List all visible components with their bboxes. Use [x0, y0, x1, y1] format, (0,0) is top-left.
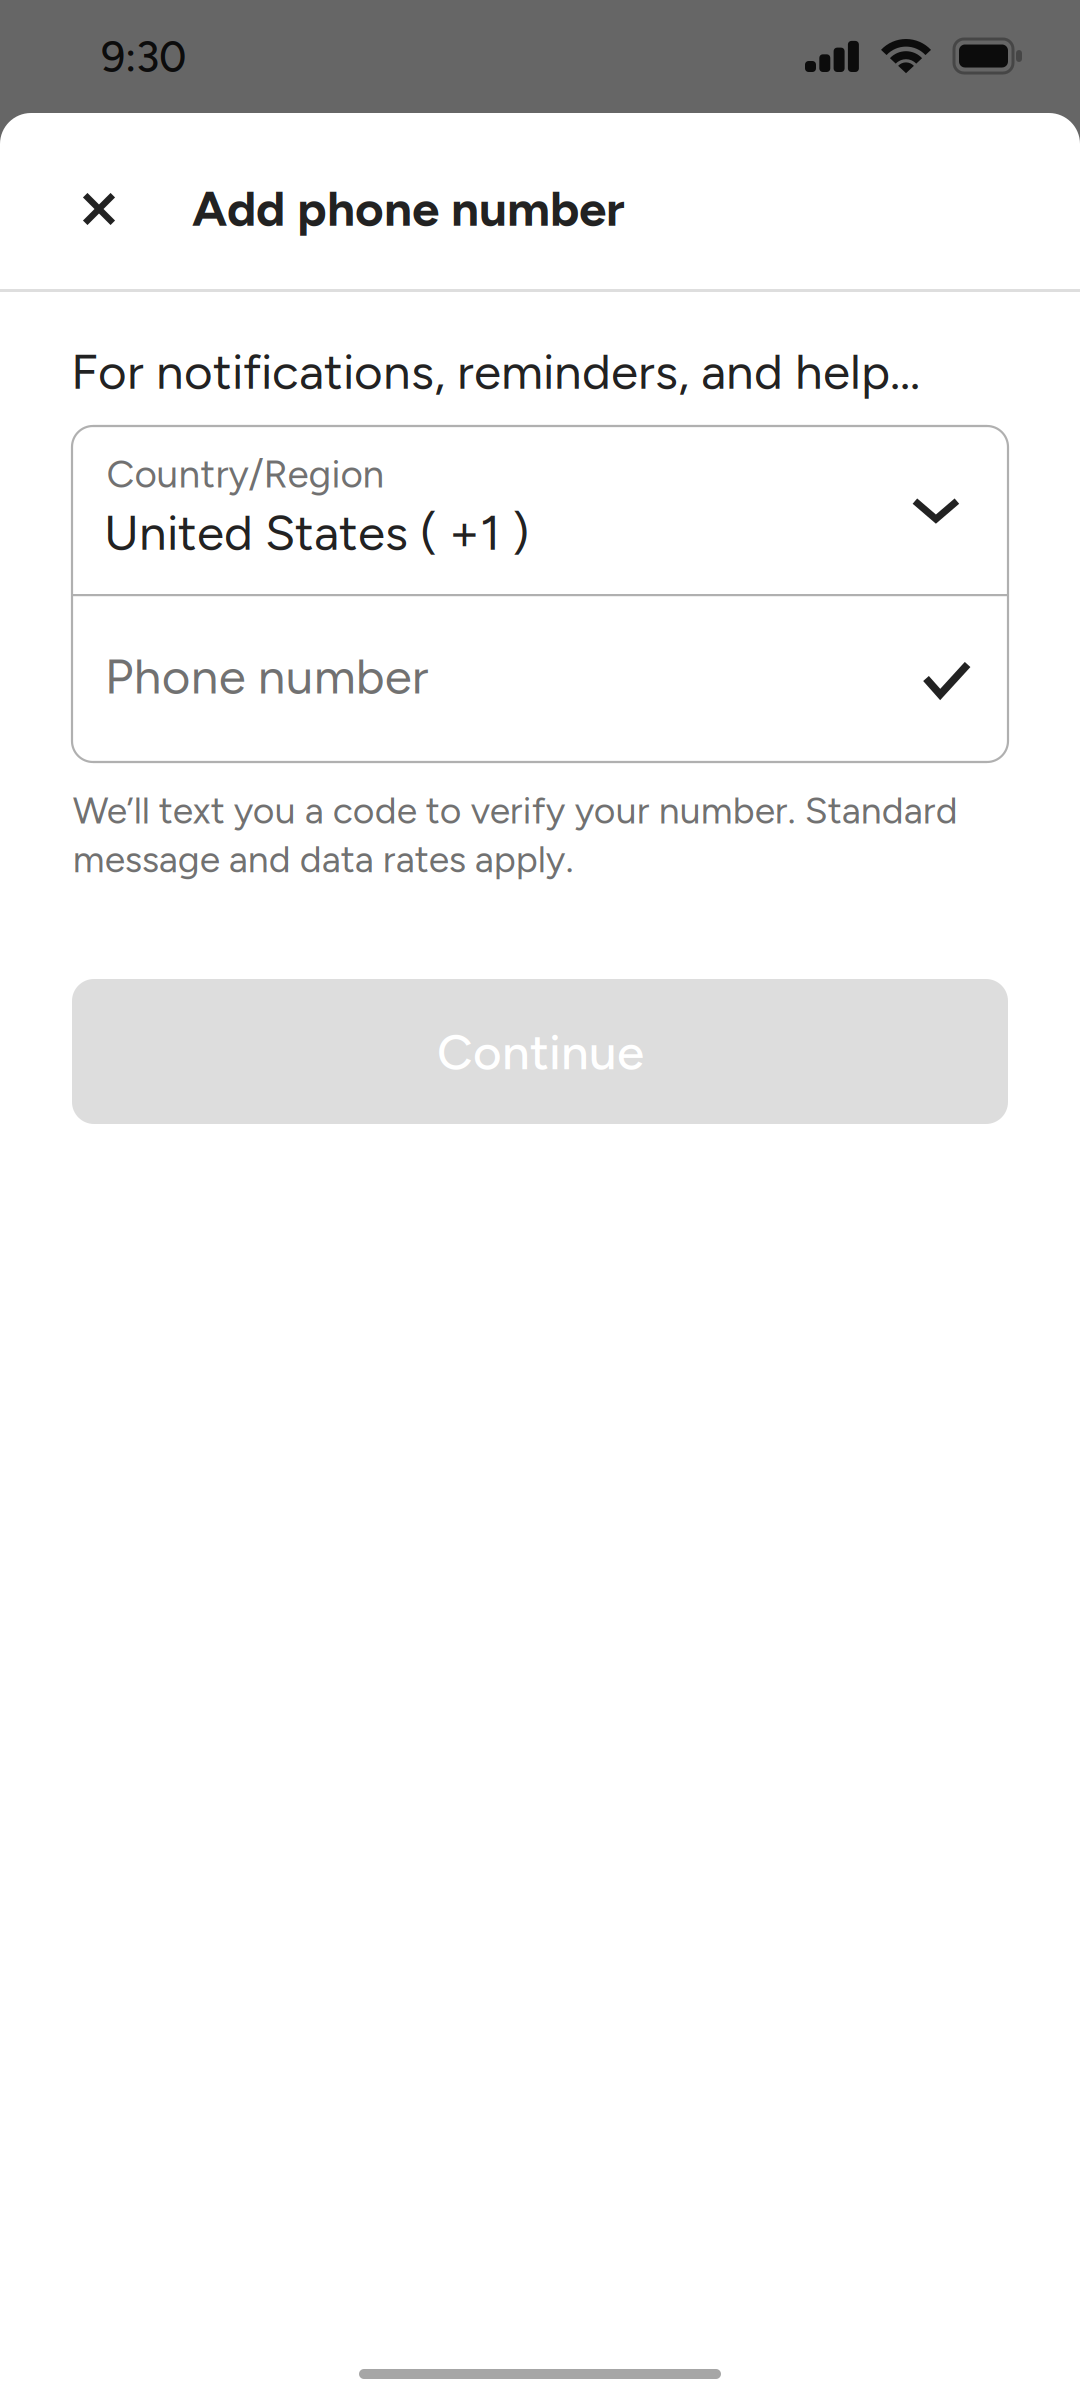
staticText: United States ( +1 ): [104, 503, 529, 562]
button[interactable]: Close: [56, 166, 142, 252]
staticText: Add phone number: [192, 179, 625, 238]
staticText: Phone number: [105, 647, 429, 706]
staticText: Country/Region: [107, 451, 385, 497]
button[interactable]: Continue: [72, 979, 1008, 1124]
staticText: 9:30: [101, 31, 186, 82]
button[interactable]: Country/Region: [72, 426, 1008, 595]
button[interactable]: Phone number: [72, 596, 1008, 762]
staticText: For notifications, reminders, and help…: [71, 342, 920, 401]
staticText: Continue: [437, 1022, 644, 1082]
staticText: We’ll text you a code to verify your num…: [73, 788, 958, 882]
